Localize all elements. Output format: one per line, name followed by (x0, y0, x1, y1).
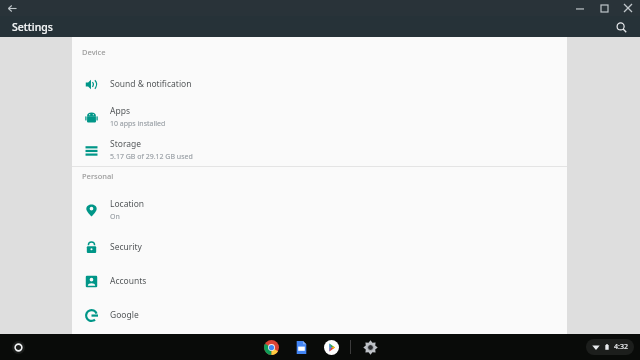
staticText: 4:32 (614, 342, 628, 352)
button[interactable]: Google (72, 301, 567, 329)
staticText: Google (110, 309, 139, 321)
staticText: Sound & notification (110, 78, 192, 90)
button[interactable]: Apps (72, 102, 567, 132)
staticText: Security (110, 241, 142, 253)
staticText: Settings (12, 20, 53, 34)
button[interactable]: Google Slides (290, 336, 312, 358)
button[interactable]: Search (612, 18, 630, 36)
button[interactable]: Location (72, 195, 567, 225)
button[interactable]: Settings (359, 336, 381, 358)
staticText: On (110, 212, 120, 222)
staticText: Accounts (110, 275, 147, 287)
staticText: 10 apps installed (110, 119, 166, 129)
button[interactable]: Storage (72, 135, 567, 165)
staticText: Location (110, 198, 145, 210)
button[interactable]: Back (4, 0, 20, 16)
button[interactable]: Launcher (8, 337, 28, 357)
staticText: Apps (110, 105, 130, 117)
button[interactable]: Maximize (598, 2, 610, 14)
button[interactable]: Close (622, 2, 634, 14)
button[interactable]: Chrome (260, 336, 282, 358)
button[interactable]: Minimize (574, 2, 586, 14)
button[interactable]: Play Store (320, 336, 342, 358)
staticText: Device (82, 47, 106, 57)
button[interactable]: Security (72, 233, 567, 261)
staticText: Personal (82, 171, 114, 181)
staticText: 5.17 GB of 29.12 GB used (110, 152, 193, 162)
button[interactable]: Sound & notification (72, 70, 567, 98)
staticText: Storage (110, 138, 142, 150)
button[interactable]: 4:32 (592, 342, 628, 352)
button[interactable]: Accounts (72, 267, 567, 295)
